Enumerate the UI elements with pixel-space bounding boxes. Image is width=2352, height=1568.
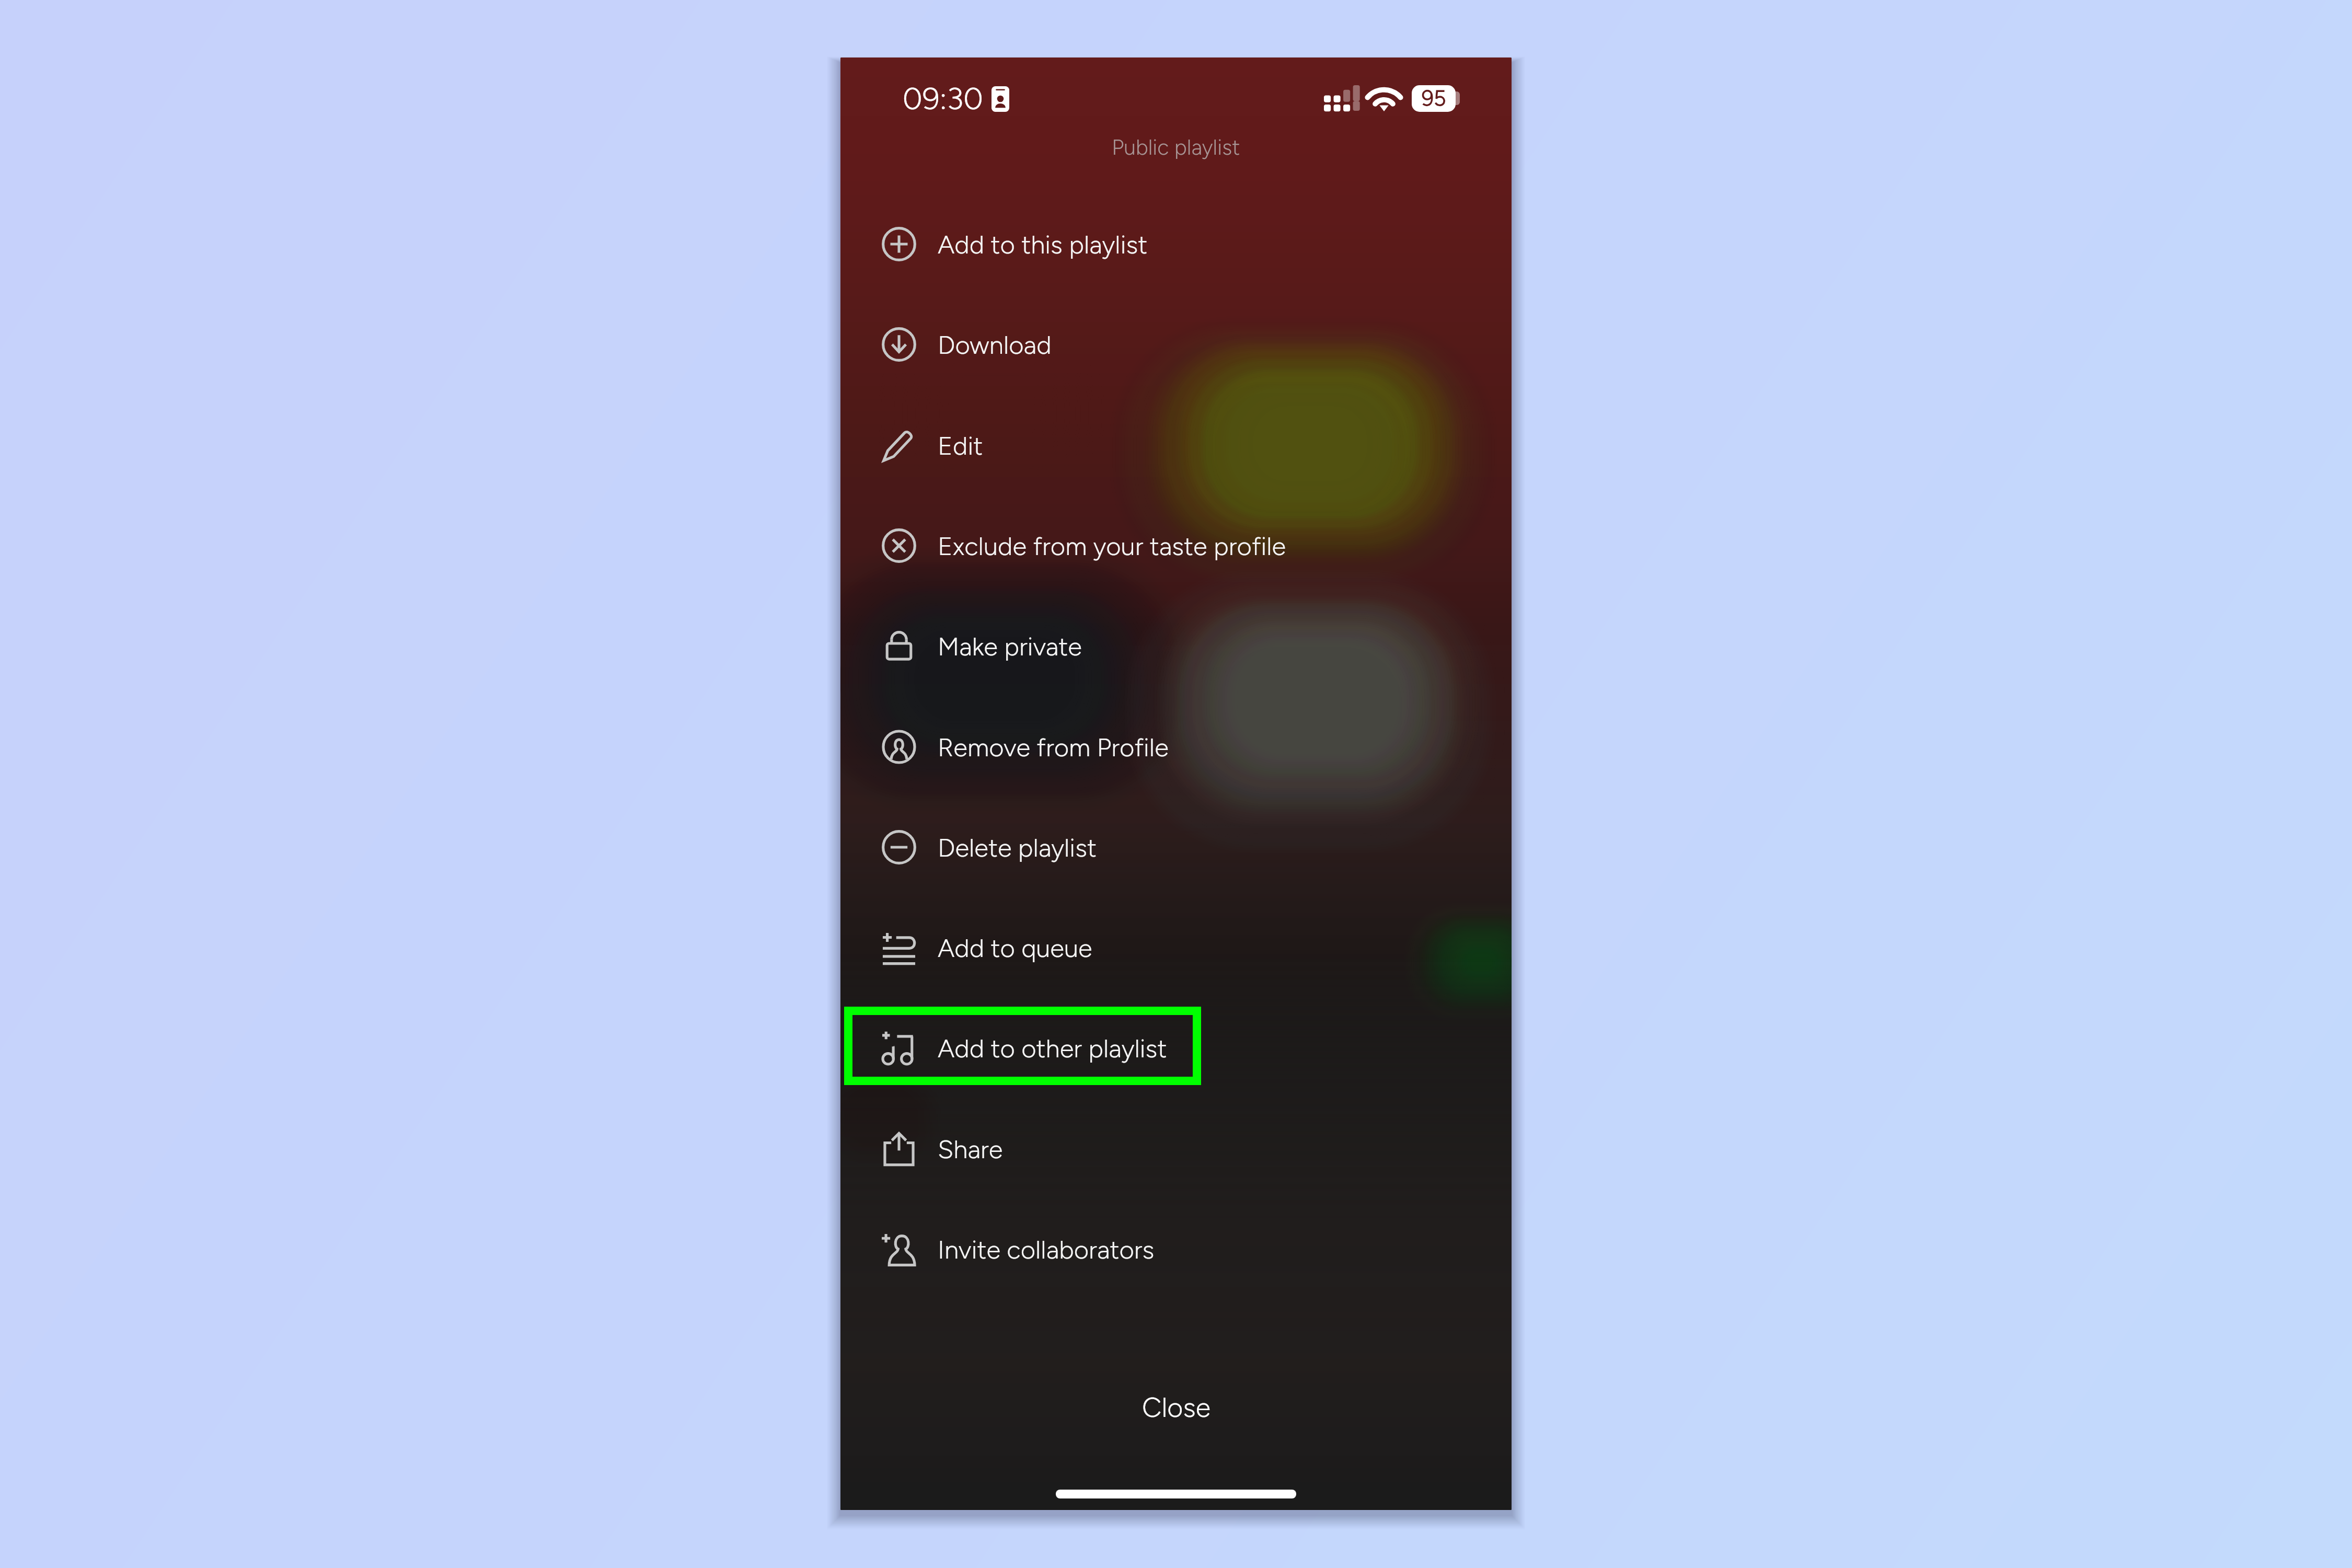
- staticText: 09:30: [903, 80, 983, 117]
- staticText: Public playlist: [1112, 134, 1240, 160]
- button[interactable]: Invite collaborators: [840, 1210, 1512, 1288]
- button[interactable]: Edit: [840, 406, 1512, 485]
- staticText: Add to queue: [938, 932, 1092, 963]
- other: Wi-Fi: [1367, 84, 1401, 111]
- staticText: Invite collaborators: [938, 1234, 1155, 1265]
- staticText: Exclude from your taste profile: [938, 531, 1286, 561]
- button[interactable]: Delete playlist: [840, 808, 1512, 886]
- staticText: Close: [1142, 1391, 1210, 1424]
- button[interactable]: Add to this playlist: [840, 205, 1512, 283]
- button[interactable]: Add to queue: [840, 908, 1512, 987]
- staticText: Make private: [938, 631, 1082, 662]
- staticText: Edit: [938, 430, 983, 461]
- staticText: Add to other playlist: [938, 1033, 1167, 1064]
- staticText: Delete playlist: [938, 832, 1097, 863]
- staticText: Share: [938, 1134, 1003, 1165]
- button[interactable]: Add to other playlist: [840, 1009, 1512, 1087]
- button[interactable]: Exclude from your taste profile: [840, 506, 1512, 585]
- staticText: Download: [938, 329, 1052, 360]
- staticText: 95: [1422, 85, 1446, 111]
- button[interactable]: Remove from Profile: [840, 708, 1512, 786]
- button[interactable]: Make private: [840, 607, 1512, 685]
- staticText: Remove from Profile: [938, 732, 1169, 763]
- other: Profile badge: [991, 86, 1009, 112]
- button[interactable]: Close: [840, 1368, 1512, 1447]
- staticText: Add to this playlist: [938, 229, 1148, 260]
- button[interactable]: Download: [840, 305, 1512, 384]
- button[interactable]: Share: [840, 1110, 1512, 1188]
- other: Mobile signal: [1324, 85, 1363, 111]
